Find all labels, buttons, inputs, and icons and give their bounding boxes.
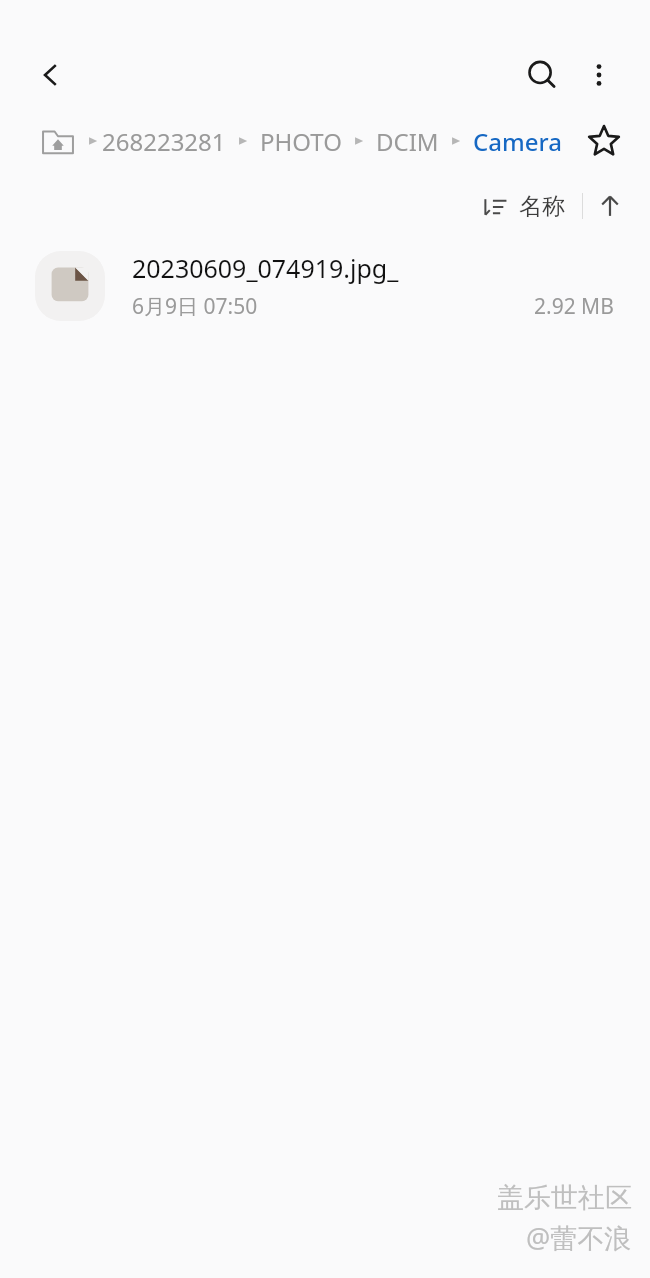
button[interactable]: DCIM	[374, 121, 441, 162]
button[interactable]: Home folder	[36, 119, 80, 163]
button[interactable]: 20230609_074919.jpg_	[0, 240, 650, 332]
staticText: 268223281	[102, 125, 226, 158]
staticText: 20230609_074919.jpg_	[132, 251, 399, 285]
button[interactable]: Add to favourites	[580, 117, 628, 165]
staticText: 6月9日 07:50	[132, 292, 258, 321]
button[interactable]: 268223281	[100, 121, 228, 162]
staticText: DCIM	[376, 125, 439, 158]
button[interactable]: Camera	[471, 121, 564, 162]
button[interactable]: Search	[513, 46, 571, 104]
button[interactable]: More options	[570, 46, 628, 104]
staticText: Camera	[473, 125, 562, 158]
button[interactable]: Back	[22, 46, 80, 104]
button[interactable]: PHOTO	[258, 121, 344, 162]
staticText: @蕾不浪	[526, 1219, 632, 1256]
button[interactable]: 名称	[474, 186, 573, 227]
button[interactable]: Sort ascending	[588, 184, 632, 228]
staticText: PHOTO	[260, 125, 342, 158]
staticText: 2.92 MB	[534, 292, 614, 321]
staticText: 名称	[519, 192, 565, 221]
staticText: 盖乐世社区	[497, 1181, 632, 1215]
